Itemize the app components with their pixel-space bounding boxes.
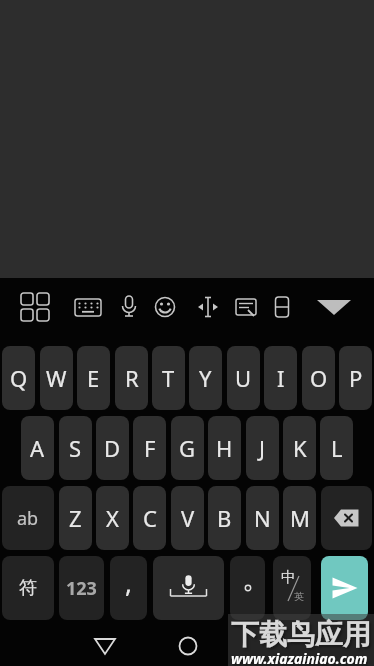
button[interactable]: W bbox=[40, 346, 73, 410]
staticText: J bbox=[259, 433, 266, 463]
button[interactable]: L bbox=[320, 416, 353, 480]
staticText: P bbox=[349, 363, 363, 393]
button[interactable] bbox=[262, 287, 302, 327]
button[interactable]: U bbox=[227, 346, 260, 410]
staticText: Y bbox=[199, 363, 212, 393]
button[interactable] bbox=[188, 287, 228, 327]
button[interactable]: N bbox=[246, 486, 279, 550]
button[interactable]: M bbox=[283, 486, 316, 550]
staticText: Q bbox=[10, 363, 28, 393]
button[interactable] bbox=[109, 287, 149, 327]
button[interactable]: I bbox=[264, 346, 297, 410]
button[interactable]: V bbox=[171, 486, 204, 550]
button[interactable]: C bbox=[133, 486, 166, 550]
staticText: M bbox=[290, 503, 310, 533]
staticText: 中 bbox=[281, 568, 296, 587]
button[interactable] bbox=[150, 626, 226, 666]
staticText: X bbox=[106, 503, 119, 533]
button[interactable] bbox=[68, 287, 108, 327]
button[interactable]: H bbox=[208, 416, 241, 480]
staticText: G bbox=[179, 433, 196, 463]
staticText: R bbox=[125, 363, 139, 393]
button[interactable] bbox=[314, 287, 354, 327]
button[interactable]: , bbox=[110, 556, 147, 620]
staticText: 123 bbox=[66, 576, 97, 601]
staticText: C bbox=[143, 503, 157, 533]
staticText: F bbox=[144, 433, 156, 463]
staticText: V bbox=[181, 503, 195, 533]
button[interactable] bbox=[60, 626, 150, 666]
button[interactable] bbox=[230, 556, 265, 620]
staticText: , bbox=[125, 565, 132, 600]
button[interactable] bbox=[15, 287, 55, 327]
button[interactable]: 符 bbox=[2, 556, 54, 620]
button[interactable]: A bbox=[21, 416, 54, 480]
button[interactable] bbox=[321, 486, 372, 550]
staticText: H bbox=[216, 433, 233, 463]
staticText: U bbox=[235, 363, 252, 393]
staticText: ab bbox=[17, 506, 39, 531]
button[interactable]: B bbox=[208, 486, 241, 550]
button[interactable]: P bbox=[339, 346, 372, 410]
staticText: S bbox=[69, 433, 82, 463]
button[interactable] bbox=[240, 626, 316, 666]
staticText: 符 bbox=[19, 577, 37, 600]
button[interactable] bbox=[321, 556, 368, 620]
staticText: W bbox=[46, 363, 67, 393]
staticText: A bbox=[30, 433, 45, 463]
button[interactable]: S bbox=[59, 416, 92, 480]
staticText: L bbox=[331, 433, 343, 463]
button[interactable]: E bbox=[77, 346, 110, 410]
button[interactable]: O bbox=[302, 346, 335, 410]
button[interactable]: D bbox=[96, 416, 129, 480]
button[interactable]: T bbox=[152, 346, 185, 410]
button[interactable]: Z bbox=[59, 486, 92, 550]
staticText: I bbox=[277, 363, 285, 393]
button[interactable]: 中 bbox=[273, 556, 311, 620]
button[interactable]: F bbox=[133, 416, 166, 480]
button[interactable]: K bbox=[283, 416, 316, 480]
staticText: D bbox=[104, 433, 121, 463]
staticText: Z bbox=[69, 503, 82, 533]
button[interactable] bbox=[153, 556, 224, 620]
button[interactable]: 123 bbox=[59, 556, 104, 620]
button[interactable]: G bbox=[171, 416, 204, 480]
button[interactable]: X bbox=[96, 486, 129, 550]
staticText: E bbox=[87, 363, 100, 393]
staticText: T bbox=[162, 363, 175, 393]
staticText: www.xiazainiao.com bbox=[231, 649, 368, 666]
staticText: B bbox=[217, 503, 232, 533]
staticText: N bbox=[254, 503, 271, 533]
button[interactable] bbox=[226, 287, 266, 327]
staticText: 英 bbox=[294, 590, 304, 603]
staticText: K bbox=[293, 433, 307, 463]
button[interactable]: ab bbox=[2, 486, 54, 550]
staticText: 下载鸟应用 bbox=[231, 617, 371, 652]
button[interactable] bbox=[145, 287, 185, 327]
button[interactable]: J bbox=[246, 416, 279, 480]
staticText: O bbox=[310, 363, 328, 393]
button[interactable]: Y bbox=[189, 346, 222, 410]
button[interactable]: R bbox=[115, 346, 148, 410]
button[interactable]: Q bbox=[2, 346, 35, 410]
